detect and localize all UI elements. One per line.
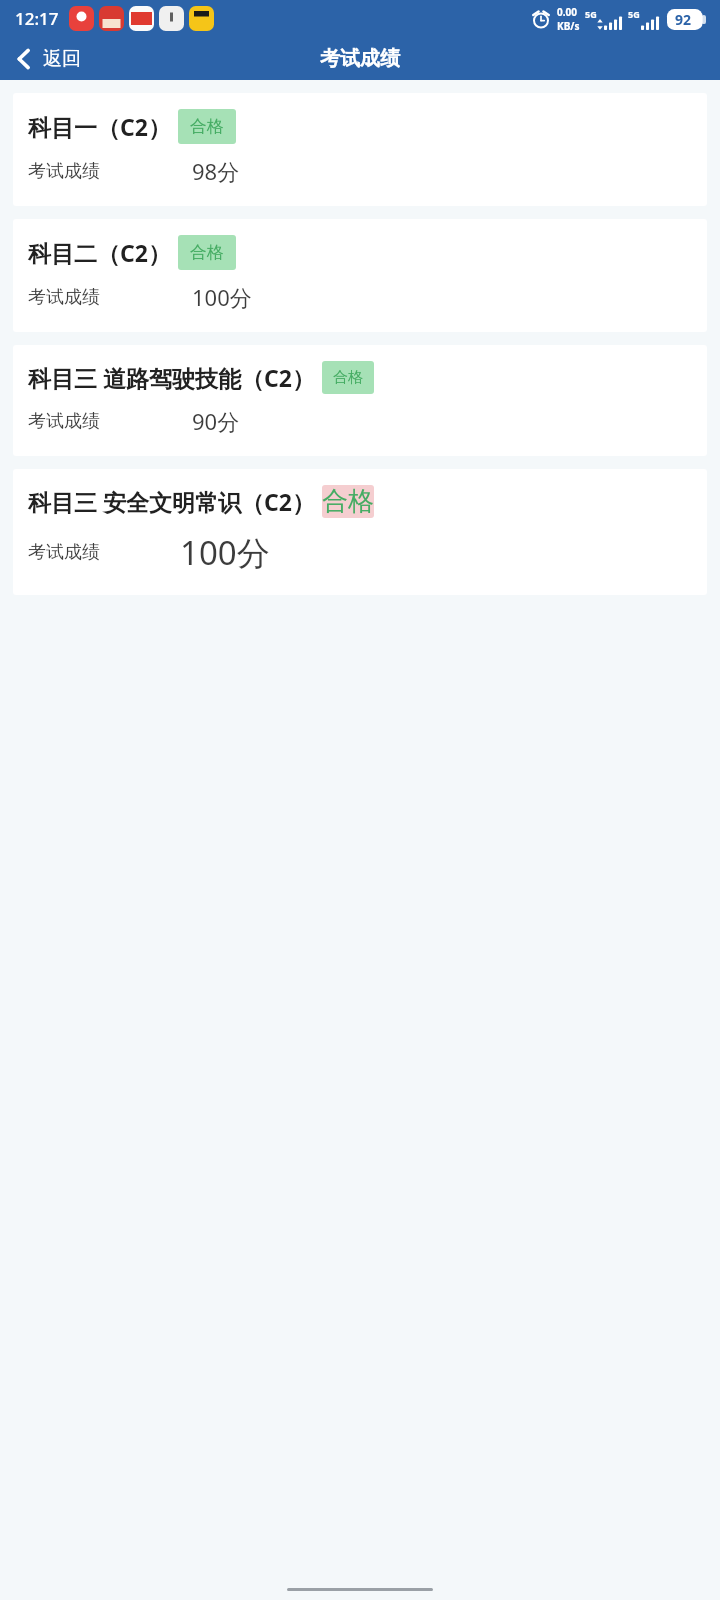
staticText: KB/s: [557, 19, 580, 33]
staticText: 考试成绩: [28, 286, 100, 309]
staticText: 合格: [190, 242, 224, 263]
staticText: 0.00: [557, 5, 577, 19]
button[interactable]: 科目二（C2）: [13, 219, 707, 332]
button[interactable]: 科目三 道路驾驶技能（C2）: [13, 345, 707, 456]
button[interactable]: 科目一（C2）: [13, 93, 707, 206]
staticText: 100分: [192, 282, 252, 312]
staticText: 90分: [192, 406, 240, 436]
other: Alarm: [531, 9, 551, 29]
staticText: 12:17: [15, 7, 59, 30]
staticText: 5G: [628, 8, 640, 20]
staticText: 考试成绩: [320, 46, 400, 71]
staticText: 合格: [333, 368, 363, 387]
staticText: 考试成绩: [28, 160, 100, 183]
staticText: 科目三 安全文明常识（C2）: [28, 486, 315, 517]
staticText: 科目一（C2）: [28, 111, 171, 142]
staticText: 科目二（C2）: [28, 237, 171, 268]
staticText: 5G: [585, 8, 597, 20]
button[interactable]: 返回: [0, 41, 95, 77]
staticText: 92: [675, 10, 692, 29]
staticText: 合格: [322, 485, 374, 518]
staticText: 科目三 道路驾驶技能（C2）: [28, 362, 315, 393]
staticText: 98分: [192, 156, 240, 186]
staticText: 考试成绩: [28, 541, 100, 564]
staticText: 合格: [190, 116, 224, 137]
button[interactable]: 科目三 安全文明常识（C2）: [13, 469, 707, 595]
staticText: 返回: [43, 47, 81, 71]
staticText: 100分: [180, 530, 270, 575]
staticText: 考试成绩: [28, 410, 100, 433]
